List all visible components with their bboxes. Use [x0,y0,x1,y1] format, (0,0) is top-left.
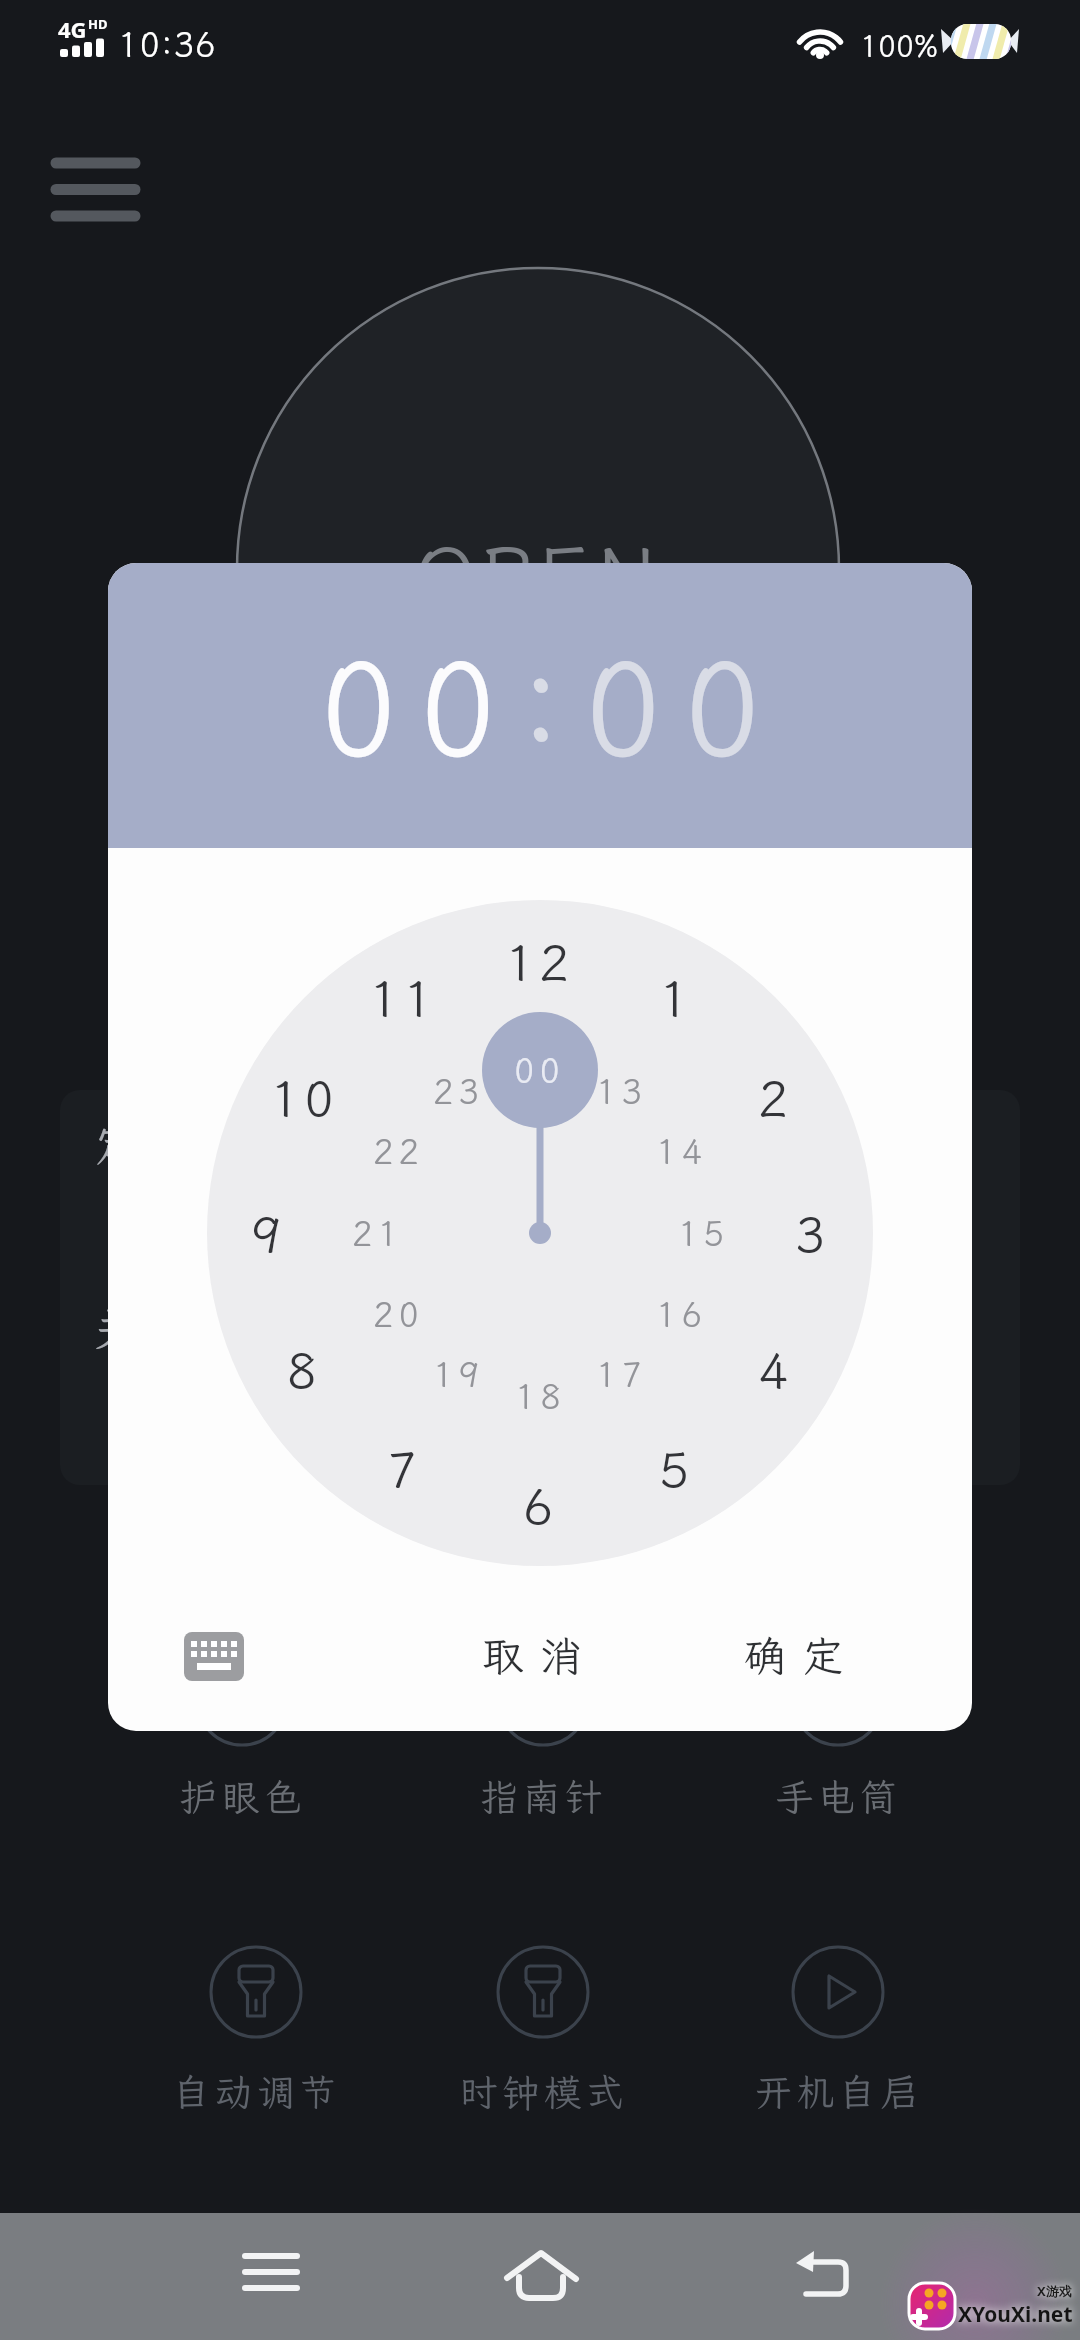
button[interactable] [237,268,839,870]
staticText: 14 [656,1129,707,1174]
staticText: 00:00 [319,619,782,793]
staticText: 00 [514,1048,565,1093]
staticText: 确定 [744,1628,861,1683]
staticText: 11 [369,964,437,1030]
staticText: X游戏 [1037,2282,1072,2300]
button[interactable] [738,1930,938,2130]
staticText: 10:36 [118,22,217,67]
staticText: 20 [373,1292,424,1337]
staticText: 100% [860,26,938,66]
staticText: 2 [758,1064,792,1130]
staticText: 23 [433,1069,484,1114]
staticText: 21 [352,1211,403,1256]
button[interactable] [156,1930,356,2130]
staticText: 17 [596,1352,647,1397]
button[interactable]: 确定 [692,1605,912,1705]
staticText: XYouXi.net [958,2300,1073,2329]
staticText: 19 [433,1352,484,1397]
button[interactable] [752,2226,892,2326]
staticText: 6 [523,1472,557,1538]
staticText: 7 [387,1435,421,1501]
staticText: 自动调节 [172,2067,341,2117]
staticText: 定 [94,1114,140,1175]
staticText: 16 [656,1292,707,1337]
staticText: 4 [758,1336,792,1402]
staticText: 手电筒 [775,1772,902,1822]
button[interactable] [471,2226,611,2326]
staticText: 关 [94,1298,140,1359]
staticText: 8 [287,1336,321,1402]
staticText: 1 [659,964,693,1030]
staticText: 15 [678,1211,729,1256]
staticText: OPEN [414,521,663,611]
staticText: 18 [515,1374,566,1419]
button[interactable] [40,140,150,240]
staticText: 13 [596,1069,647,1114]
staticText: 时钟模式 [459,2067,628,2117]
staticText: HD [88,15,108,33]
button[interactable]: 取消 [430,1605,650,1705]
staticText: 指南针 [480,1772,607,1822]
staticText: 5 [659,1435,693,1501]
button[interactable] [170,1618,260,1698]
staticText: 取消 [482,1628,599,1683]
staticText: 12 [505,928,573,994]
staticText: 22 [373,1129,424,1174]
button[interactable] [748,1650,928,1830]
staticText: 开机自启 [754,2067,923,2117]
staticText: 10 [270,1064,338,1130]
button[interactable] [443,1930,643,2130]
button[interactable] [152,1650,332,1830]
staticText: 3 [795,1200,829,1266]
button[interactable] [201,2226,341,2326]
staticText: 9 [251,1200,285,1266]
staticText: 4G [58,14,87,44]
button[interactable] [453,1650,633,1830]
staticText: 护眼色 [179,1772,306,1822]
